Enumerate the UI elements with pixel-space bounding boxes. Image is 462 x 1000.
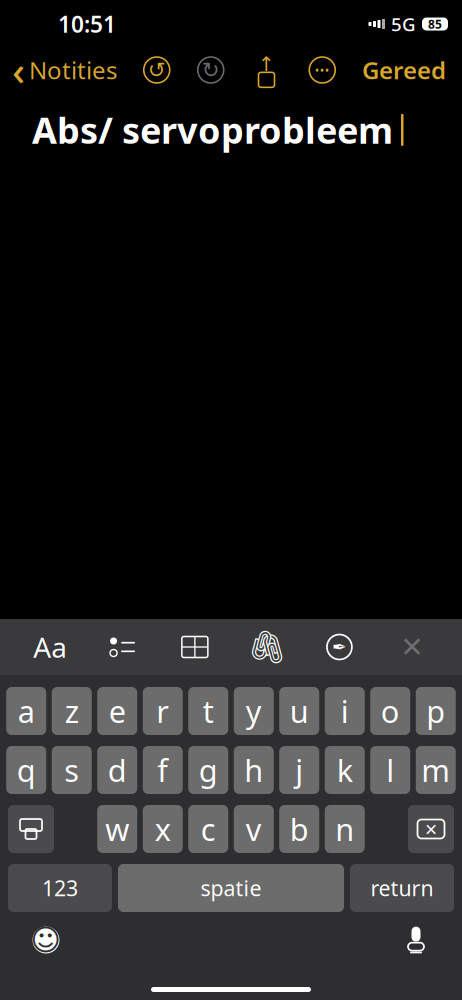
button[interactable]: j	[279, 746, 319, 794]
staticText: m	[421, 750, 450, 790]
button[interactable]: Backspace	[408, 805, 454, 853]
button[interactable]: w	[97, 805, 137, 853]
button[interactable]: Table	[173, 625, 217, 669]
staticText: l	[386, 750, 394, 790]
button[interactable]: Close	[390, 625, 434, 669]
staticText: i	[341, 691, 349, 731]
button[interactable]: m	[416, 746, 456, 794]
staticText: w	[105, 809, 129, 849]
button[interactable]: x	[143, 805, 183, 853]
button[interactable]: c	[188, 805, 228, 853]
button[interactable]: f	[143, 746, 183, 794]
staticText: q	[17, 750, 36, 790]
staticText: e	[109, 691, 126, 731]
button[interactable]: z	[52, 687, 92, 735]
button[interactable]: t	[188, 687, 228, 735]
button[interactable]: h	[234, 746, 274, 794]
staticText: r	[156, 691, 169, 731]
staticText: g	[199, 750, 218, 790]
button[interactable]: return	[350, 864, 454, 912]
staticText: v	[246, 809, 262, 849]
button[interactable]: Undo	[142, 55, 172, 85]
staticText: z	[65, 691, 79, 731]
staticText: k	[337, 750, 353, 790]
button[interactable]: y	[234, 687, 274, 735]
button[interactable]: d	[97, 746, 137, 794]
staticText: ↻	[202, 58, 220, 82]
button[interactable]: g	[188, 746, 228, 794]
button[interactable]: k	[325, 746, 365, 794]
button[interactable]: n	[325, 805, 365, 853]
staticText: x	[155, 809, 171, 849]
button[interactable]: 123	[8, 864, 112, 912]
button[interactable]: Redo	[196, 55, 226, 85]
staticText: Aa	[33, 628, 67, 666]
staticText: 85	[428, 16, 442, 32]
staticText: j	[295, 750, 303, 790]
button[interactable]: Checklist	[101, 625, 145, 669]
staticText: ×	[425, 815, 437, 843]
staticText: ‹	[12, 43, 25, 96]
button[interactable]: Attach	[245, 625, 289, 669]
staticText: f	[157, 750, 168, 790]
button[interactable]: o	[370, 687, 410, 735]
staticText: ↑	[258, 53, 275, 75]
button[interactable]: More	[307, 55, 337, 85]
button[interactable]: Gereed	[362, 48, 462, 92]
button[interactable]: Shift	[8, 805, 54, 853]
staticText: b	[290, 809, 309, 849]
staticText: c	[201, 809, 216, 849]
staticText: t	[203, 691, 214, 731]
staticText: ✒	[332, 637, 347, 657]
staticText: ☺	[30, 923, 61, 957]
staticText: Abs/ servoprobleem	[32, 106, 393, 154]
staticText: •••	[315, 62, 330, 78]
staticText: y	[246, 691, 262, 731]
button[interactable]: b	[279, 805, 319, 853]
button[interactable]: Text format	[28, 625, 72, 669]
button[interactable]: q	[6, 746, 46, 794]
staticText: spatie	[200, 874, 261, 902]
button[interactable]: Dictate	[392, 918, 440, 962]
staticText: p	[426, 691, 445, 731]
staticText: s	[64, 750, 79, 790]
button[interactable]: Share	[250, 53, 282, 87]
button[interactable]: l	[370, 746, 410, 794]
button[interactable]: s	[52, 746, 92, 794]
staticText: 10:51	[58, 9, 116, 39]
staticText: 123	[42, 874, 78, 902]
button[interactable]: i	[325, 687, 365, 735]
button[interactable]: u	[279, 687, 319, 735]
staticText: return	[370, 874, 433, 902]
staticText: u	[290, 691, 309, 731]
staticText: h	[244, 750, 263, 790]
staticText: d	[108, 750, 127, 790]
staticText: a	[18, 691, 35, 731]
staticText: Notities	[29, 54, 117, 86]
button[interactable]: Emoji	[22, 918, 70, 962]
button[interactable]: a	[6, 687, 46, 735]
button[interactable]: spatie	[118, 864, 344, 912]
button[interactable]: ‹	[0, 48, 117, 92]
staticText: n	[335, 809, 354, 849]
button[interactable]: v	[234, 805, 274, 853]
staticText: 5G	[391, 12, 416, 36]
staticText: ↺	[148, 58, 166, 82]
staticText: Gereed	[362, 54, 446, 86]
button[interactable]: r	[143, 687, 183, 735]
staticText: ✕	[400, 631, 423, 663]
button[interactable]: p	[416, 687, 456, 735]
button[interactable]: Markup	[317, 625, 361, 669]
staticText: o	[381, 691, 400, 731]
button[interactable]: e	[97, 687, 137, 735]
staticText: 🖇	[247, 629, 288, 665]
